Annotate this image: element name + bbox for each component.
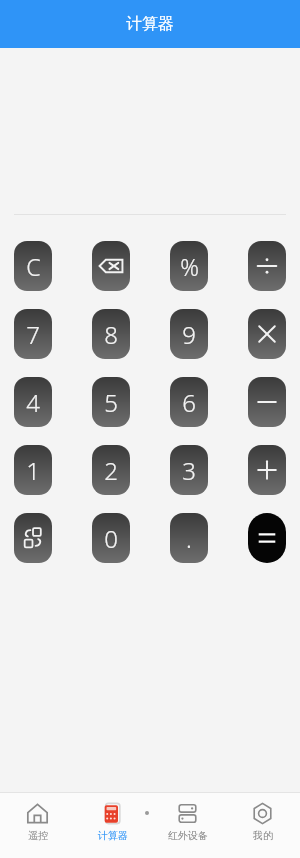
staticText: % [180,251,199,282]
button[interactable]: C [14,241,52,291]
button[interactable]: 7 [14,309,52,359]
button[interactable]: 6 [170,377,208,427]
button[interactable]: Backspace [92,241,130,291]
button[interactable]: % [170,241,208,291]
staticText: 8 [104,318,118,351]
staticText: . [186,522,192,555]
staticText: 计算器 [98,829,128,842]
button[interactable]: Plus [248,445,286,495]
button[interactable]: 4 [14,377,52,427]
button[interactable]: 5 [92,377,130,427]
staticText: 计算器 [126,14,174,34]
staticText: 6 [182,386,196,419]
button[interactable]: Divide [248,241,286,291]
button[interactable]: . [170,513,208,563]
staticText: 4 [26,386,40,419]
button[interactable]: 8 [92,309,130,359]
button[interactable]: 9 [170,309,208,359]
button[interactable]: 红外设备 [150,793,225,858]
button[interactable]: 遥控 [0,793,75,858]
staticText: 5 [104,386,118,419]
staticText: 红外设备 [168,829,208,842]
button[interactable]: 计算器 [75,793,150,858]
staticText: 9 [182,318,196,351]
staticText: 2 [104,454,118,487]
staticText: 3 [182,454,196,487]
button[interactable]: Convert units [14,513,52,563]
button[interactable]: Multiply [248,309,286,359]
staticText: 遥控 [28,829,48,842]
staticText: 0 [104,522,118,555]
button[interactable]: 2 [92,445,130,495]
button[interactable]: 0 [92,513,130,563]
staticText: 我的 [253,829,273,842]
staticText: C [26,251,41,282]
staticText: 1 [26,454,40,487]
button[interactable]: Equals [248,513,286,563]
button[interactable]: Minus [248,377,286,427]
button[interactable]: 我的 [225,793,300,858]
button[interactable]: 3 [170,445,208,495]
button[interactable]: 1 [14,445,52,495]
staticText: 7 [26,318,40,351]
